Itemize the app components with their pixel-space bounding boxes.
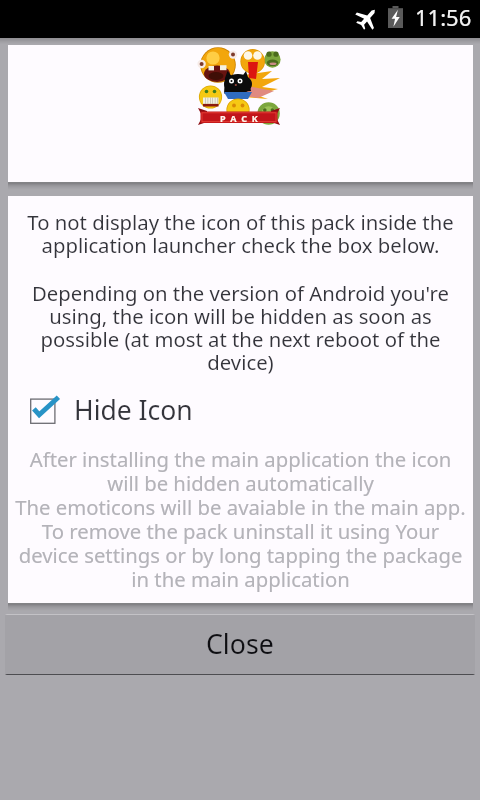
staticText: Depending on the version of Android you'… bbox=[8, 279, 473, 376]
other: Battery charging bbox=[388, 6, 403, 28]
staticText: To not display the icon of this pack ins… bbox=[8, 208, 473, 259]
staticText: After installing the main application th… bbox=[8, 445, 473, 592]
button[interactable]: Hide Icon bbox=[8, 388, 473, 432]
staticText: Close bbox=[206, 625, 274, 661]
staticText: 11:56 bbox=[415, 2, 472, 32]
staticText: Hide Icon bbox=[74, 392, 193, 428]
other: Airplane mode bbox=[356, 7, 379, 29]
button[interactable]: Close bbox=[5, 614, 475, 675]
staticText: P A C K bbox=[220, 112, 258, 124]
